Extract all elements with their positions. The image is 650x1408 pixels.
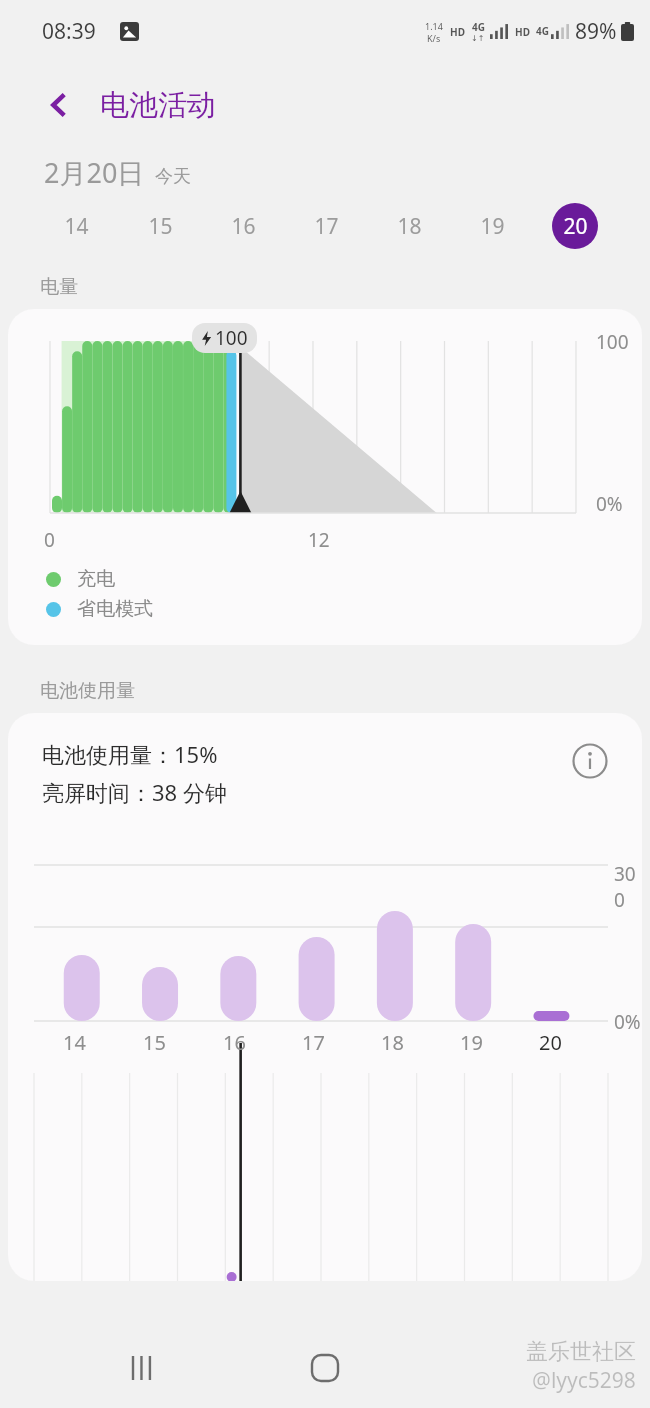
button[interactable]: Back bbox=[34, 80, 84, 130]
staticText: HD bbox=[515, 25, 530, 39]
staticText: 17 bbox=[302, 1029, 325, 1056]
staticText: 1.14 bbox=[425, 20, 443, 32]
staticText: 0 bbox=[44, 527, 55, 553]
staticText: ↓↑ bbox=[471, 34, 485, 43]
staticText: 15 bbox=[148, 212, 173, 241]
button[interactable]: 充电 bbox=[46, 567, 115, 591]
staticText: 18 bbox=[397, 212, 422, 241]
staticText: 亮屏时间：38 分钟 bbox=[42, 777, 227, 807]
staticText: 300 bbox=[614, 861, 642, 913]
staticText: 电池使用量：15% bbox=[42, 739, 218, 769]
staticText: 08:39 bbox=[42, 17, 96, 46]
staticText: 今天 bbox=[155, 165, 191, 188]
staticText: 89% bbox=[575, 17, 617, 46]
staticText: 100 bbox=[596, 329, 629, 355]
button[interactable]: 100 bbox=[8, 309, 642, 645]
staticText: 19 bbox=[460, 1029, 483, 1056]
button[interactable]: Home bbox=[293, 1336, 357, 1400]
staticText: 12 bbox=[308, 527, 330, 553]
staticText: K/s bbox=[427, 32, 441, 44]
staticText: 0% bbox=[614, 1009, 641, 1035]
staticText: 0% bbox=[596, 491, 623, 517]
button[interactable]: 16 bbox=[201, 191, 284, 261]
staticText: 电量 bbox=[40, 275, 78, 299]
staticText: 省电模式 bbox=[77, 597, 153, 621]
button[interactable]: 20 bbox=[533, 191, 616, 261]
staticText: 4G bbox=[472, 20, 485, 34]
button[interactable]: 17 bbox=[284, 191, 367, 261]
button[interactable]: 电池使用量：15% bbox=[8, 713, 642, 1281]
staticText: 100 bbox=[215, 325, 248, 351]
staticText: 16 bbox=[223, 1029, 246, 1056]
button[interactable]: 18 bbox=[367, 191, 450, 261]
staticText: 17 bbox=[314, 212, 339, 241]
staticText: 电池活动 bbox=[100, 87, 216, 124]
button[interactable]: 19 bbox=[450, 191, 533, 261]
button[interactable]: 14 bbox=[34, 191, 118, 261]
staticText: 2月20日 bbox=[44, 154, 145, 191]
staticText: 充电 bbox=[77, 567, 115, 591]
staticText: HD bbox=[450, 25, 465, 39]
button[interactable]: Recents bbox=[110, 1336, 174, 1400]
button[interactable]: Info bbox=[568, 739, 612, 783]
staticText: 18 bbox=[381, 1029, 404, 1056]
staticText: 20 bbox=[539, 1029, 562, 1056]
staticText: 4G bbox=[536, 24, 549, 38]
staticText: 14 bbox=[63, 1029, 86, 1056]
button[interactable]: 省电模式 bbox=[46, 597, 153, 621]
staticText: 14 bbox=[64, 212, 89, 241]
staticText: 电池使用量 bbox=[40, 679, 135, 703]
staticText: 19 bbox=[480, 212, 505, 241]
staticText: @lyyc5298 bbox=[532, 1366, 636, 1395]
button[interactable]: 15 bbox=[118, 191, 201, 261]
staticText: 16 bbox=[231, 212, 256, 241]
staticText: 盖乐世社区 bbox=[526, 1338, 636, 1366]
staticText: 20 bbox=[563, 212, 588, 241]
staticText: 15 bbox=[143, 1029, 166, 1056]
